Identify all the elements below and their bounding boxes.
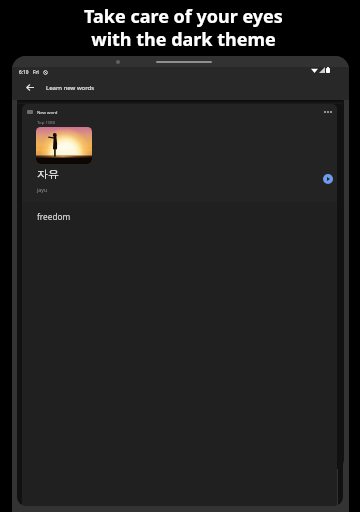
staticText: 6:10: [19, 69, 29, 75]
button[interactable]: Back: [22, 79, 38, 95]
button[interactable]: Play pronunciation: [323, 174, 333, 184]
staticText: New word: [37, 109, 58, 115]
staticText: jayu: [37, 186, 48, 193]
staticText: freedom: [37, 211, 71, 222]
staticText: 자유: [37, 167, 59, 181]
staticText: Top 1080: [37, 119, 56, 125]
button[interactable]: More options: [322, 107, 334, 117]
staticText: Take care of your eyes with the dark the…: [84, 4, 283, 51]
staticText: Fri: [33, 69, 39, 75]
staticText: Learn new words: [46, 84, 95, 92]
